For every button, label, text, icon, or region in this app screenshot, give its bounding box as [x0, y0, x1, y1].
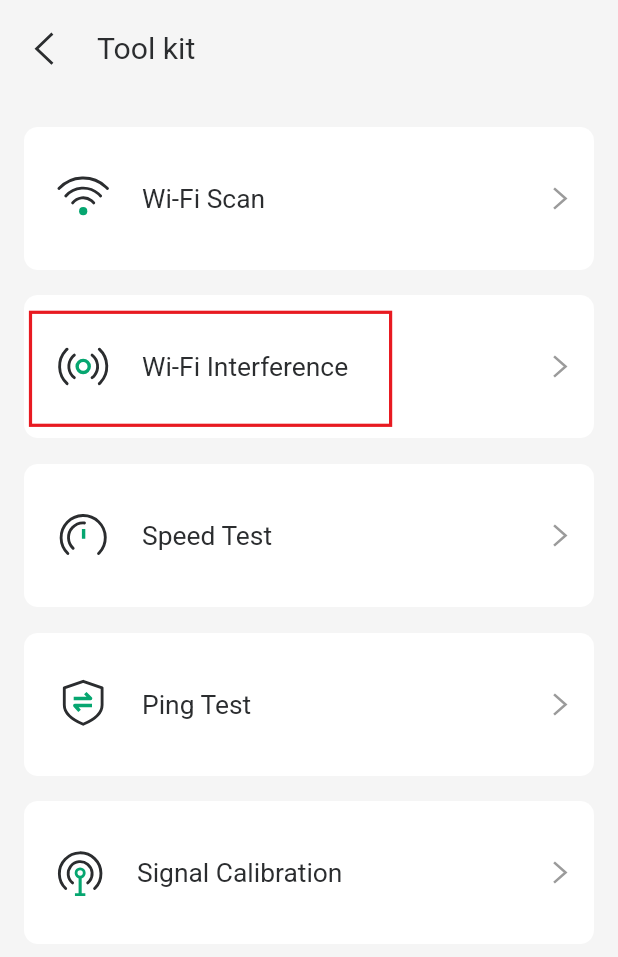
staticText: Ping Test — [142, 690, 252, 721]
staticText: Wi-Fi Scan — [142, 184, 266, 215]
button[interactable]: Ping Test — [24, 633, 594, 776]
button[interactable]: Signal Calibration — [24, 801, 594, 944]
staticText: Wi-Fi Interference — [142, 352, 349, 383]
button[interactable]: Speed Test — [24, 464, 594, 607]
button[interactable]: Wi-Fi Interference — [24, 295, 594, 438]
button[interactable]: Back — [20, 25, 68, 73]
staticText: Signal Calibration — [137, 858, 343, 889]
staticText: Tool kit — [97, 31, 196, 66]
staticText: Speed Test — [142, 521, 273, 552]
button[interactable]: Wi-Fi Scan — [24, 127, 594, 270]
